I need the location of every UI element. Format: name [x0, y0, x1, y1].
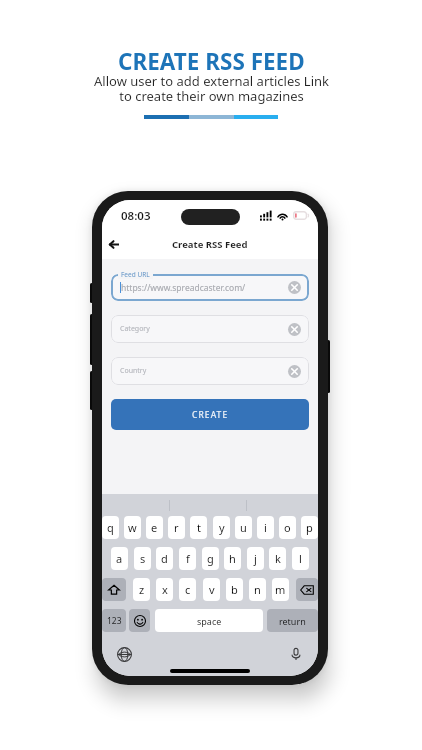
button[interactable]: Dictate	[286, 644, 306, 664]
staticText: a	[116, 551, 123, 566]
staticText: t	[197, 520, 201, 535]
button[interactable]: x	[156, 578, 173, 601]
staticText: v	[209, 582, 215, 597]
button[interactable]: j	[247, 547, 264, 570]
staticText: Category	[120, 324, 150, 334]
button[interactable]: z	[133, 578, 150, 601]
button[interactable]: https://www.spreadcaster.com/	[111, 274, 309, 301]
staticText: f	[186, 551, 190, 566]
other: Emoji	[134, 615, 146, 627]
button[interactable]: e	[146, 516, 163, 539]
button[interactable]: l	[292, 547, 309, 570]
button[interactable]: u	[235, 516, 252, 539]
staticText: m	[275, 582, 286, 597]
other: Backspace	[300, 583, 314, 597]
staticText: k	[275, 551, 281, 566]
staticText: o	[284, 520, 291, 535]
staticText: Country	[120, 366, 147, 376]
staticText: l	[299, 551, 302, 566]
button[interactable]: w	[124, 516, 141, 539]
button[interactable]: n	[249, 578, 266, 601]
button[interactable]: Backspace	[296, 578, 318, 601]
button[interactable]: i	[257, 516, 274, 539]
button[interactable]: v	[203, 578, 220, 601]
staticText: g	[207, 551, 214, 566]
staticText: 08:03	[121, 208, 151, 224]
staticText: c	[185, 582, 191, 597]
other: Shift	[108, 584, 120, 596]
button[interactable]: 123	[102, 609, 126, 632]
button[interactable]: d	[156, 547, 173, 570]
button[interactable]: Change keyboard	[114, 644, 134, 664]
staticText: e	[151, 520, 158, 535]
button[interactable]: f	[179, 547, 196, 570]
staticText: q	[107, 520, 114, 535]
staticText: space	[197, 615, 222, 627]
button[interactable]: g	[202, 547, 219, 570]
staticText: r	[174, 520, 179, 535]
button[interactable]: c	[179, 578, 196, 601]
staticText: x	[162, 582, 168, 597]
button[interactable]: Back	[104, 234, 124, 254]
staticText: h	[229, 551, 236, 566]
button[interactable]: Emoji	[129, 609, 150, 632]
button[interactable]: k	[269, 547, 286, 570]
button[interactable]: a	[111, 547, 128, 570]
staticText: d	[161, 551, 168, 566]
button[interactable]: b	[226, 578, 243, 601]
staticText: Feed URL	[121, 270, 150, 279]
staticText: j	[254, 551, 257, 566]
button[interactable]: o	[279, 516, 296, 539]
button[interactable]: s	[134, 547, 151, 570]
staticText: n	[254, 582, 261, 597]
staticText: 123	[107, 615, 122, 627]
button[interactable]: y	[213, 516, 230, 539]
staticText: p	[306, 520, 313, 535]
staticText: return	[279, 615, 306, 627]
staticText: CREATE	[192, 409, 229, 421]
staticText: i	[264, 520, 267, 535]
staticText: CREATE RSS FEED	[118, 46, 305, 77]
staticText: https://www.spreadcaster.com/	[121, 282, 246, 294]
staticText: z	[139, 582, 145, 597]
button[interactable]: q	[102, 516, 119, 539]
staticText: b	[231, 582, 238, 597]
staticText: u	[240, 520, 247, 535]
button[interactable]: m	[272, 578, 289, 601]
staticText: w	[128, 520, 137, 535]
staticText: Allow user to add external articles Link…	[94, 72, 329, 104]
button[interactable]: p	[301, 516, 318, 539]
staticText: s	[140, 551, 146, 566]
button[interactable]: CREATE	[111, 399, 309, 430]
staticText: y	[219, 520, 225, 535]
button[interactable]: Shift	[102, 578, 126, 601]
button[interactable]: t	[190, 516, 207, 539]
button[interactable]: return	[267, 609, 318, 632]
staticText: Create RSS Feed	[172, 238, 248, 251]
button[interactable]: space	[155, 609, 263, 632]
button[interactable]: h	[224, 547, 241, 570]
button[interactable]: Category	[111, 315, 309, 343]
button[interactable]: r	[168, 516, 185, 539]
button[interactable]: Country	[111, 357, 309, 385]
